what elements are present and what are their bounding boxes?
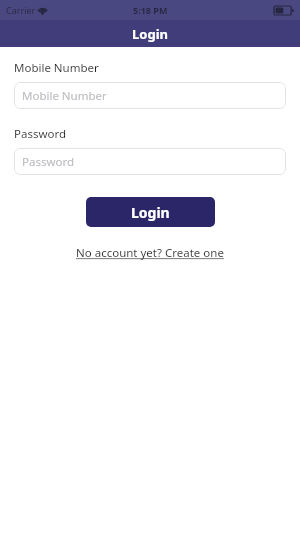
staticText: Login (132, 25, 168, 43)
button[interactable]: Login (86, 197, 215, 227)
staticText: Mobile Number (14, 60, 99, 76)
staticText: Mobile Number (22, 88, 107, 104)
staticText: 5:18 PM (133, 4, 168, 16)
staticText: Login (131, 203, 170, 222)
button[interactable]: Mobile Number (14, 82, 286, 109)
button[interactable]: Password (14, 148, 286, 175)
staticText: Password (22, 154, 75, 170)
button[interactable]: No account yet? Create one (72, 243, 228, 263)
staticText: Password (14, 126, 67, 142)
staticText: No account yet? Create one (76, 245, 224, 261)
staticText: Carrier (6, 4, 36, 16)
